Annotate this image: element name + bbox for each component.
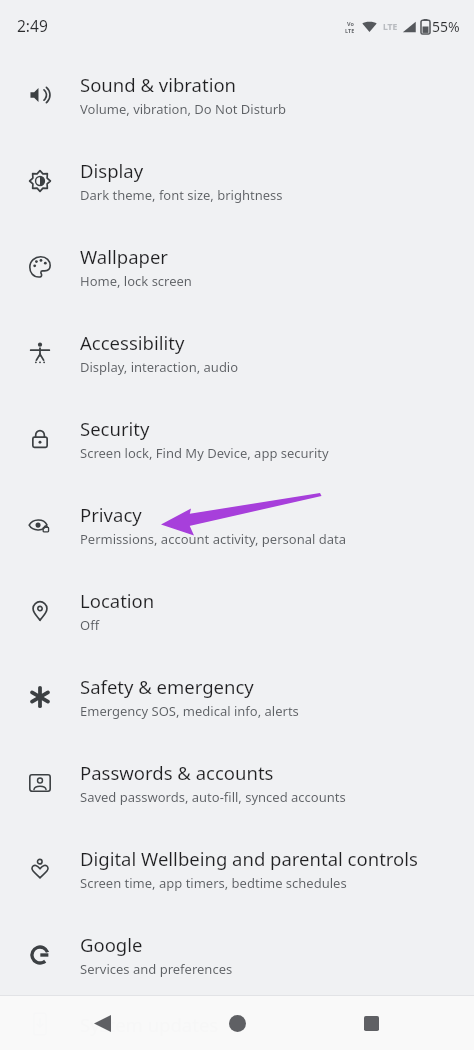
- button[interactable]: Sound & vibration: [0, 52, 474, 138]
- staticText: Display, interaction, audio: [80, 358, 239, 376]
- staticText: 55%: [432, 17, 460, 36]
- button[interactable]: Home: [215, 1001, 259, 1045]
- button[interactable]: Safety & emergency: [0, 654, 474, 740]
- button[interactable]: Wallpaper: [0, 224, 474, 310]
- button[interactable]: Back: [80, 1001, 124, 1045]
- staticText: LTE: [345, 27, 355, 34]
- staticText: System updates: [80, 1012, 219, 1037]
- staticText: Vo: [347, 20, 354, 27]
- staticText: Emergency SOS, medical info, alerts: [80, 702, 299, 720]
- staticText: Wallpaper: [80, 244, 168, 269]
- staticText: Display: [80, 158, 144, 183]
- staticText: Volume, vibration, Do Not Disturb: [80, 100, 287, 118]
- staticText: Security: [80, 416, 150, 441]
- staticText: Saved passwords, auto-fill, synced accou…: [80, 788, 346, 806]
- staticText: Digital Wellbeing and parental controls: [80, 846, 418, 871]
- button[interactable]: Privacy: [0, 482, 474, 568]
- staticText: LTE: [383, 21, 398, 33]
- staticText: Location: [80, 588, 155, 613]
- button[interactable]: Digital Wellbeing and parental controls: [0, 826, 474, 912]
- staticText: Off: [80, 616, 100, 634]
- staticText: Screen lock, Find My Device, app securit…: [80, 444, 329, 462]
- staticText: Safety & emergency: [80, 674, 254, 699]
- staticText: Screen time, app timers, bedtime schedul…: [80, 874, 347, 892]
- button[interactable]: Recent apps: [349, 1001, 393, 1045]
- button[interactable]: Google: [0, 912, 474, 998]
- staticText: Dark theme, font size, brightness: [80, 186, 283, 204]
- staticText: Accessibility: [80, 330, 185, 355]
- button[interactable]: Passwords & accounts: [0, 740, 474, 826]
- button[interactable]: System updates: [0, 998, 474, 1050]
- button[interactable]: Display: [0, 138, 474, 224]
- staticText: Sound & vibration: [80, 72, 237, 97]
- staticText: 2:49: [17, 15, 48, 36]
- staticText: Google: [80, 932, 143, 957]
- button[interactable]: Security: [0, 396, 474, 482]
- button[interactable]: Accessibility: [0, 310, 474, 396]
- staticText: Home, lock screen: [80, 272, 192, 290]
- staticText: Passwords & accounts: [80, 760, 274, 785]
- staticText: Permissions, account activity, personal …: [80, 530, 346, 548]
- staticText: Services and preferences: [80, 960, 233, 978]
- staticText: Privacy: [80, 502, 142, 527]
- button[interactable]: Location: [0, 568, 474, 654]
